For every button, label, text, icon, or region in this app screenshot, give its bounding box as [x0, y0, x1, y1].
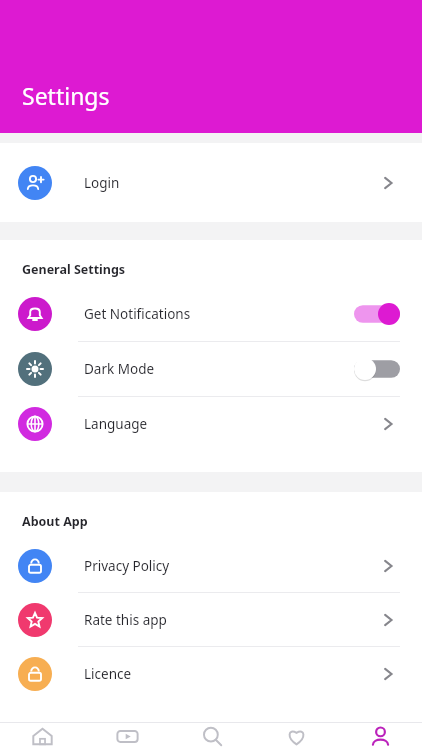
button[interactable]: Login [0, 143, 422, 222]
staticText: Get Notifications [84, 305, 191, 323]
button[interactable] [354, 358, 400, 380]
button[interactable]: Favourites [254, 723, 338, 750]
staticText: Rate this app [84, 611, 167, 629]
button[interactable]: Get Notifications [0, 287, 422, 341]
button[interactable]: Home [0, 723, 85, 750]
staticText: Settings [22, 80, 110, 111]
button[interactable]: Profile [338, 723, 422, 750]
staticText: About App [22, 513, 88, 530]
staticText: General Settings [22, 261, 126, 278]
button[interactable] [354, 303, 400, 325]
staticText: Privacy Policy [84, 557, 170, 575]
button[interactable]: Rate this app [0, 593, 422, 646]
button[interactable]: Privacy Policy [0, 539, 422, 592]
staticText: Language [84, 415, 148, 433]
staticText: Licence [84, 665, 132, 683]
button[interactable]: Language [0, 397, 422, 451]
button[interactable]: Dark Mode [0, 342, 422, 396]
button[interactable]: Licence [0, 647, 422, 700]
staticText: Dark Mode [84, 360, 155, 378]
button[interactable]: Videos [85, 723, 170, 750]
staticText: Login [84, 174, 120, 192]
button[interactable]: Search [170, 723, 254, 750]
